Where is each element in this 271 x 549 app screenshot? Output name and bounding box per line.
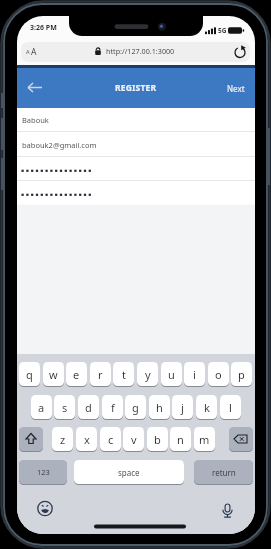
- staticText: d: [85, 400, 92, 415]
- staticText: c: [108, 432, 114, 447]
- staticText: REGISTER: [115, 82, 157, 94]
- staticText: q: [26, 367, 33, 382]
- button[interactable]: n: [170, 427, 191, 451]
- button[interactable]: [21, 76, 49, 100]
- button[interactable]: j: [172, 395, 193, 419]
- button[interactable]: l: [220, 395, 241, 419]
- button[interactable]: m: [194, 427, 215, 451]
- button[interactable]: g: [125, 395, 146, 419]
- staticText: w: [49, 367, 58, 382]
- button[interactable]: e: [66, 362, 87, 386]
- staticText: Babouk: [22, 115, 49, 125]
- staticText: y: [145, 367, 151, 382]
- button[interactable]: y: [137, 362, 158, 386]
- staticText: i: [193, 367, 196, 382]
- button[interactable]: z: [52, 427, 73, 451]
- staticText: g: [132, 400, 139, 415]
- button[interactable]: return: [194, 460, 253, 484]
- staticText: p: [238, 367, 245, 382]
- button[interactable]: s: [54, 395, 75, 419]
- staticText: 3:26 PM: [30, 23, 57, 33]
- button[interactable]: t: [113, 362, 134, 386]
- staticText: t: [122, 367, 126, 382]
- staticText: e: [73, 367, 80, 382]
- staticText: z: [60, 432, 66, 447]
- button[interactable]: q: [19, 362, 40, 386]
- staticText: http://127.00.1:3000: [106, 46, 175, 56]
- button[interactable]: [37, 500, 54, 517]
- button[interactable]: v: [123, 427, 144, 451]
- button[interactable]: k: [196, 395, 217, 419]
- button[interactable]: u: [161, 362, 182, 386]
- button[interactable]: [229, 427, 253, 451]
- staticText: j: [181, 400, 184, 415]
- button[interactable]: r: [90, 362, 111, 386]
- button[interactable]: c: [100, 427, 121, 451]
- staticText: babouk2@gmail.com: [22, 140, 97, 150]
- button[interactable]: h: [149, 395, 170, 419]
- button[interactable]: a: [31, 395, 52, 419]
- button[interactable]: f: [102, 395, 123, 419]
- staticText: a: [38, 400, 45, 415]
- button[interactable]: 123: [19, 460, 67, 484]
- staticText: v: [131, 432, 137, 447]
- staticText: f: [111, 400, 115, 415]
- staticText: space: [118, 467, 140, 478]
- button[interactable]: x: [76, 427, 97, 451]
- button[interactable]: [17, 180, 255, 205]
- staticText: u: [168, 367, 175, 382]
- staticText: l: [229, 400, 232, 415]
- button[interactable]: [19, 427, 43, 451]
- staticText: k: [204, 400, 210, 415]
- button[interactable]: d: [78, 395, 99, 419]
- button[interactable]: w: [43, 362, 64, 386]
- staticText: 123: [37, 467, 50, 477]
- button[interactable]: b: [147, 427, 168, 451]
- staticText: A: [31, 46, 37, 58]
- button[interactable]: i: [184, 362, 205, 386]
- staticText: b: [154, 432, 161, 447]
- staticText: h: [156, 400, 163, 415]
- staticText: Next: [227, 83, 245, 94]
- button[interactable]: space: [74, 460, 184, 484]
- staticText: r: [98, 367, 103, 382]
- button[interactable]: [17, 156, 255, 180]
- staticText: s: [62, 400, 68, 415]
- button[interactable]: [21, 42, 250, 62]
- button[interactable]: [17, 108, 255, 131]
- staticText: A: [26, 48, 30, 55]
- staticText: x: [84, 432, 90, 447]
- staticText: m: [199, 432, 210, 447]
- staticText: 5G: [218, 26, 227, 35]
- button[interactable]: [94, 522, 186, 531]
- staticText: o: [215, 367, 222, 382]
- staticText: n: [177, 432, 184, 447]
- staticText: return: [212, 467, 236, 478]
- button[interactable]: p: [231, 362, 252, 386]
- button[interactable]: [17, 131, 255, 155]
- button[interactable]: o: [208, 362, 229, 386]
- button[interactable]: [219, 500, 236, 517]
- button[interactable]: Next: [219, 78, 253, 98]
